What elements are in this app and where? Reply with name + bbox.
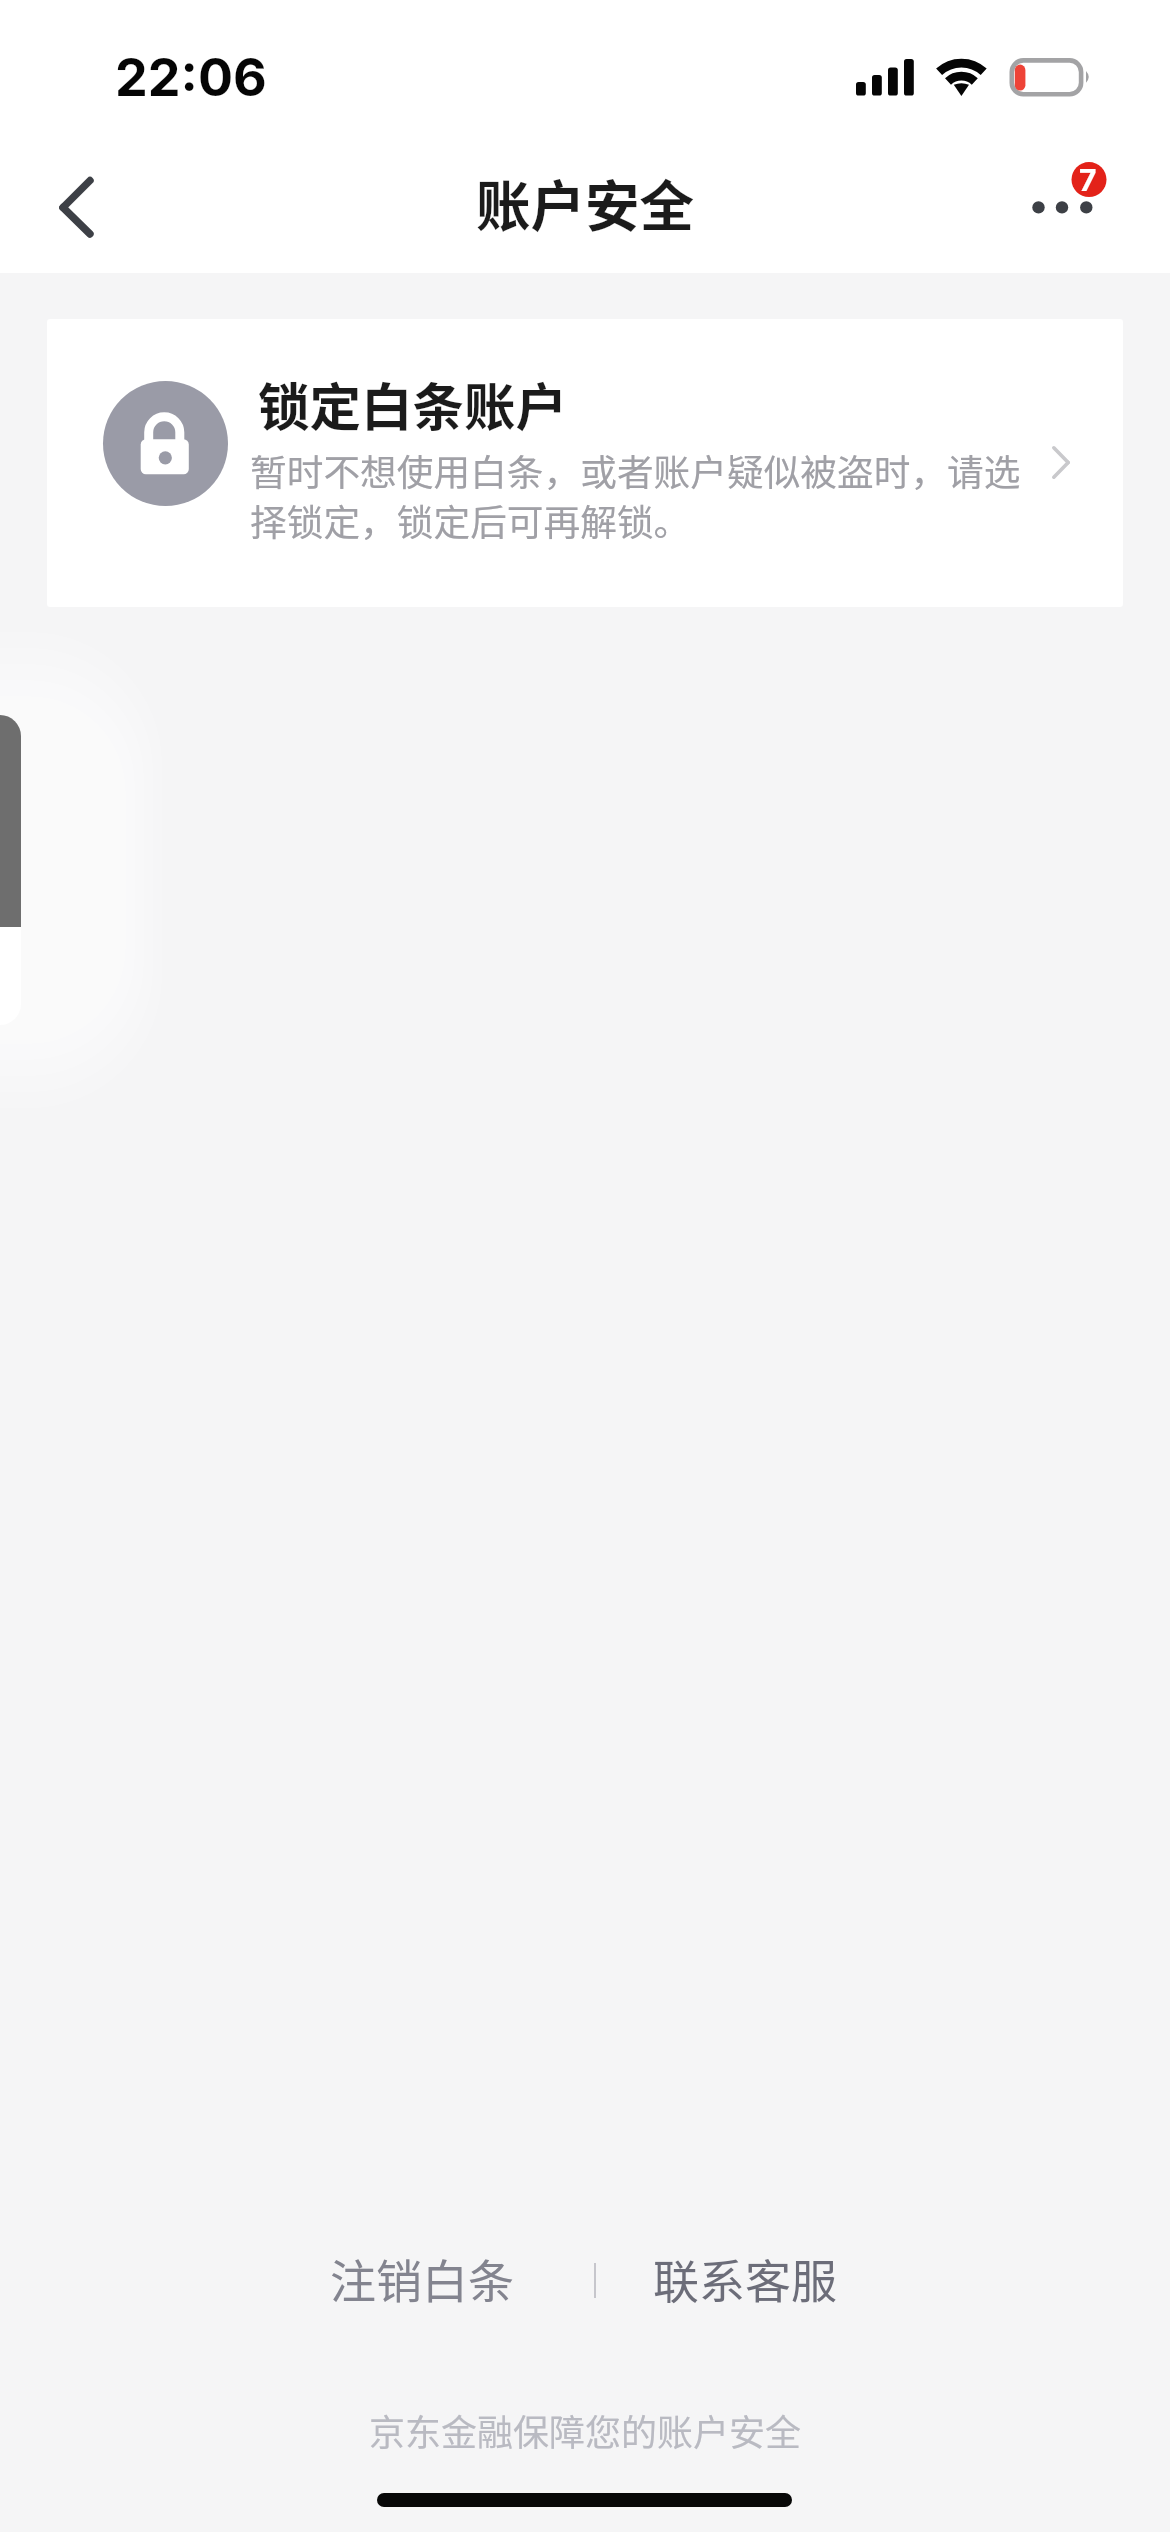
staticText: 账户安全 (476, 163, 695, 242)
staticText: 京东金融保障您的账户安全 (0, 2404, 1170, 2456)
button[interactable]: 锁定白条账户 (47, 319, 1123, 607)
button[interactable]: 联系客服 (621, 2223, 869, 2334)
staticText: 7 (1079, 162, 1097, 198)
staticText: 注销白条 (330, 2245, 514, 2312)
button[interactable]: More options (1006, 148, 1136, 258)
staticText: 暂时不想使用白条，或者账户疑似被盗时，请选择锁定，锁定后可再解锁。 (250, 446, 1040, 546)
staticText: 联系客服 (653, 2245, 837, 2312)
staticText: 锁定白条账户 (258, 366, 568, 441)
button[interactable]: Back (16, 152, 126, 262)
staticText: 22:06 (115, 46, 267, 109)
button[interactable]: 注销白条 (298, 2223, 546, 2334)
